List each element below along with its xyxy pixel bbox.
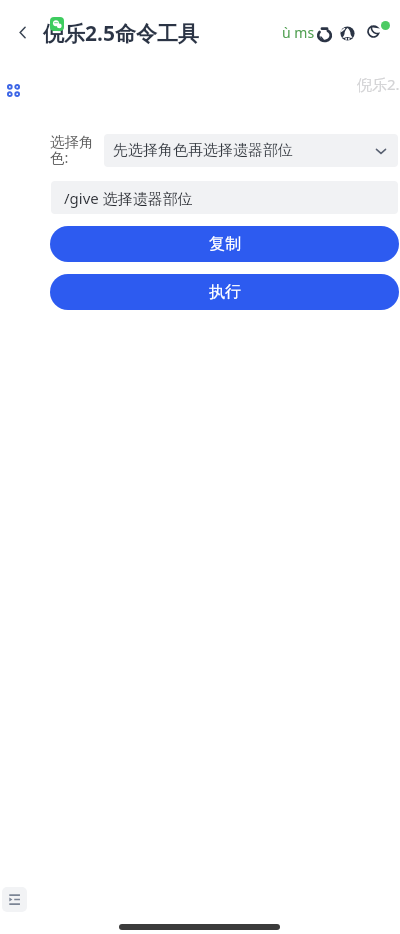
button[interactable]: Refresh <box>336 22 358 44</box>
staticText: 执行 <box>209 282 241 302</box>
button[interactable]: Dark mode <box>362 20 384 42</box>
staticText: /give 选择遗器部位 <box>64 188 193 208</box>
button[interactable]: Apps <box>0 77 27 104</box>
staticText: 倪乐2.5命令工具 <box>43 19 199 48</box>
button[interactable]: /give 选择遗器部位 <box>51 181 398 214</box>
staticText: 选择角色: <box>50 133 97 166</box>
button[interactable]: 执行 <box>50 274 399 310</box>
staticText: 复制 <box>209 234 241 254</box>
button[interactable]: GitHub <box>313 22 335 44</box>
staticText: 倪乐2.5命令工具 <box>357 74 400 94</box>
button[interactable]: Console <box>2 887 27 912</box>
button[interactable]: Back <box>9 19 35 45</box>
staticText: 先选择角色再选择遗器部位 <box>113 141 293 160</box>
button[interactable]: 先选择角色再选择遗器部位 <box>104 134 398 167</box>
staticText: ù ms <box>282 23 315 42</box>
button[interactable]: 复制 <box>50 226 399 262</box>
